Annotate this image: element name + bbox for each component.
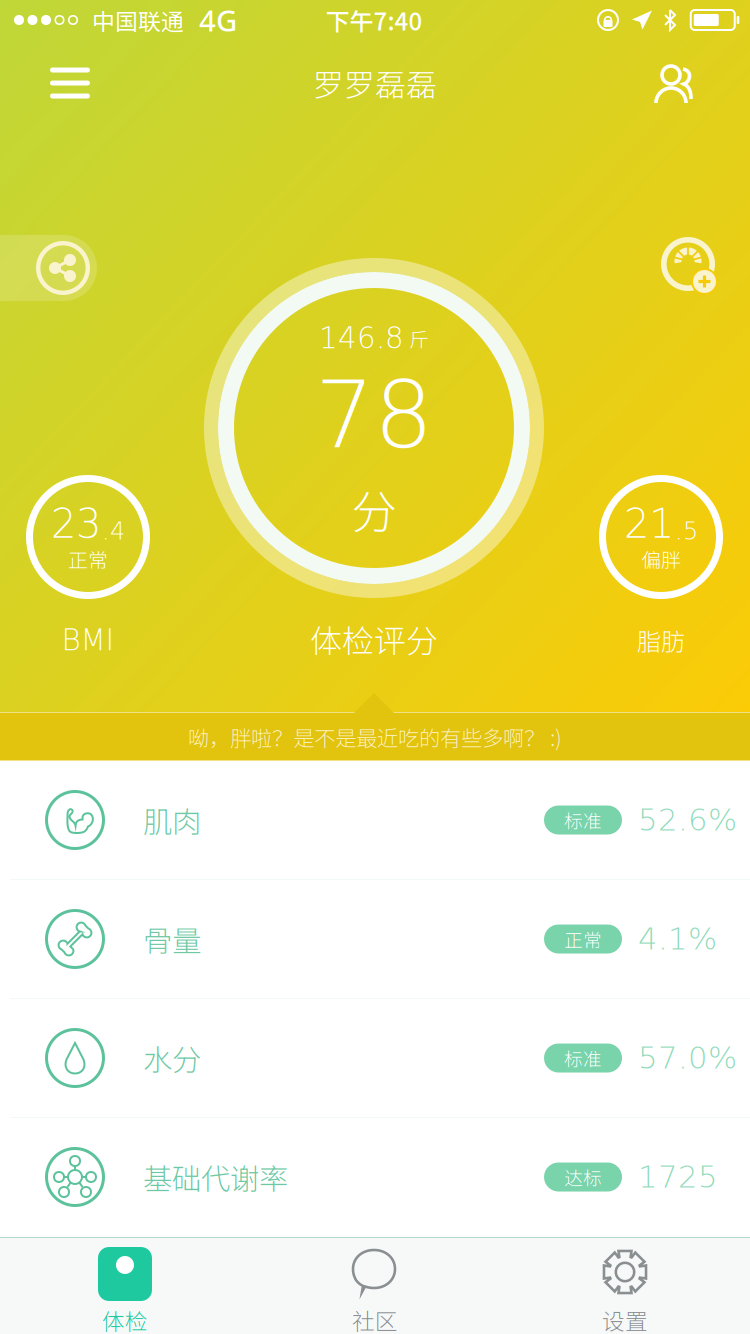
button[interactable]: 水分 (0, 998, 750, 1117)
staticText: 水分 (143, 1037, 201, 1079)
staticText: 4.1% (638, 921, 717, 957)
button[interactable]: Community (348, 1245, 402, 1299)
staticText: 呦，胖啦？是不是最近吃的有些多啊？ :) (188, 722, 562, 752)
button[interactable]: Menu (30, 51, 110, 115)
staticText: 标准 (564, 1044, 602, 1071)
button[interactable] (98, 1247, 152, 1301)
staticText: 达标 (564, 1163, 602, 1190)
staticText: 分 (351, 476, 396, 542)
button[interactable]: Add measurement (654, 230, 734, 310)
button[interactable]: Friends (638, 51, 718, 115)
staticText: .4 (102, 517, 125, 545)
staticText: 斤 (409, 324, 429, 353)
staticText: 罗罗磊磊 (313, 61, 437, 105)
staticText: 脂肪 (637, 623, 685, 657)
button[interactable]: 基础代谢率 (0, 1117, 750, 1236)
staticText: 78 (315, 361, 433, 469)
staticText: 1725 (638, 1159, 718, 1195)
staticText: 23 (51, 501, 101, 547)
staticText: 设置 (602, 1304, 648, 1334)
staticText: BMI (61, 623, 114, 657)
staticText: 体检 (102, 1304, 148, 1334)
staticText: .5 (675, 517, 698, 545)
staticText: 正常 (564, 925, 602, 952)
staticText: 肌肉 (143, 799, 201, 841)
staticText: 21 (624, 501, 674, 547)
staticText: 标准 (564, 806, 602, 833)
button[interactable]: Settings (598, 1245, 652, 1299)
button[interactable]: 骨量 (0, 879, 750, 998)
staticText: 57.0% (638, 1040, 737, 1076)
button[interactable]: Share (0, 235, 97, 301)
staticText: 146.8 (319, 321, 404, 355)
staticText: 偏胖 (641, 544, 681, 573)
button[interactable]: 肌肉 (0, 760, 750, 879)
staticText: 基础代谢率 (143, 1156, 288, 1198)
staticText: 正常 (68, 544, 108, 573)
staticText: 下午7:40 (325, 3, 422, 37)
staticText: 中国联通 (92, 4, 184, 36)
staticText: 4G (199, 0, 237, 40)
staticText: 社区 (352, 1304, 398, 1334)
staticText: 体检评分 (310, 616, 438, 662)
staticText: 骨量 (143, 918, 201, 960)
staticText: 52.6% (638, 802, 737, 838)
